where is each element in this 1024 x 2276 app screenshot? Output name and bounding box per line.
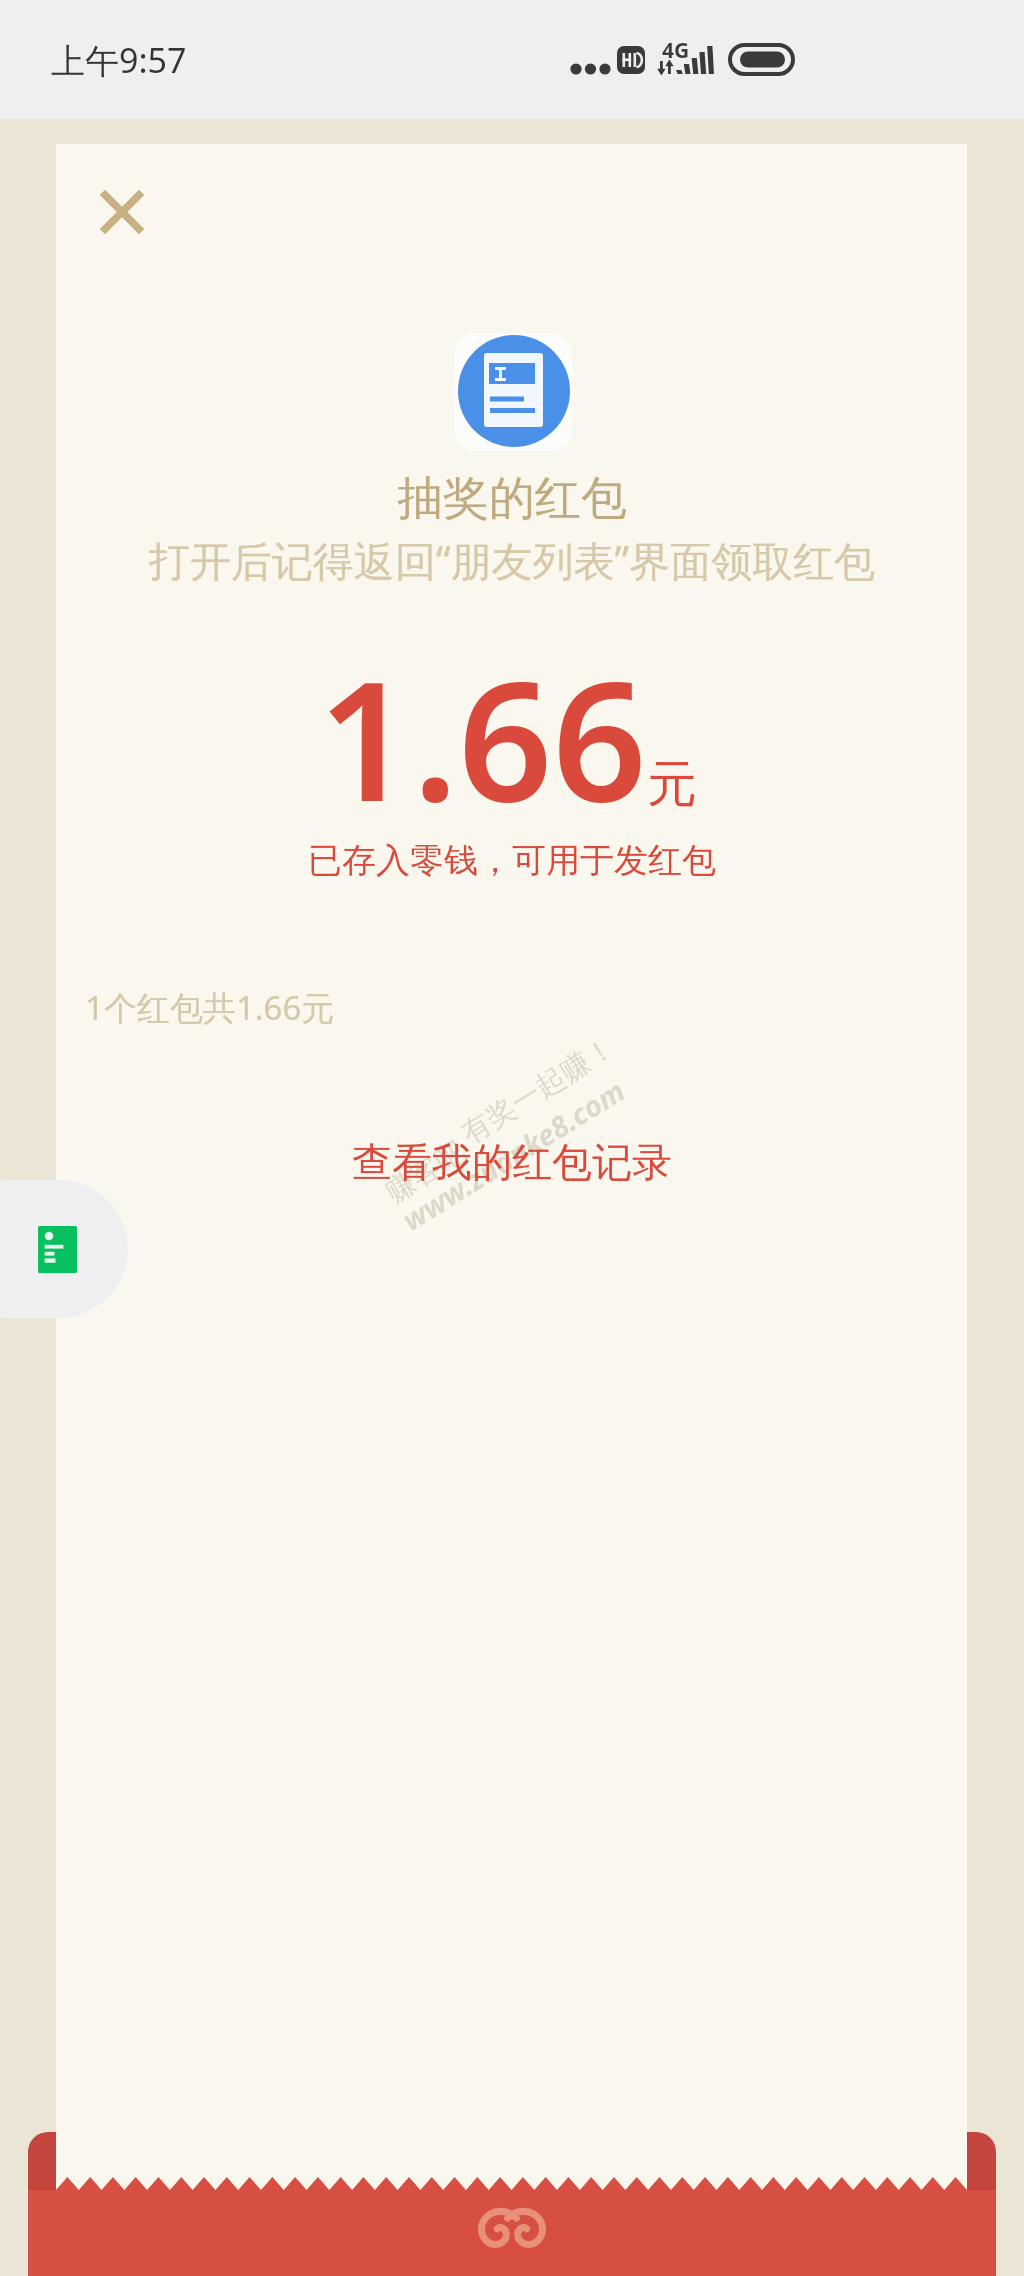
staticText: 查看我的红包记录 [352,1137,672,1187]
button[interactable]: 查看我的红包记录 [352,1137,672,1187]
staticText: 元 [647,753,697,816]
staticText: 打开后记得返回“朋友列表”界面领取红包 [0,532,1024,588]
staticText: 已存入零钱，可用于发红包 [0,839,1024,882]
staticText: 4G [662,36,690,65]
button[interactable]: Notes shortcut [0,1180,128,1318]
staticText: 抽奖的红包 [0,470,1024,528]
staticText: 有奖一起赚！ [455,1029,622,1152]
staticText: 赚客吧 [379,1133,472,1211]
staticText: 1.66 [318,625,647,850]
staticText: 上午9:57 [51,37,187,83]
button[interactable]: Close [80,170,164,254]
staticText: 1个红包共1.66元 [85,985,335,1030]
staticText: www.zuanke8.com [394,1070,632,1239]
